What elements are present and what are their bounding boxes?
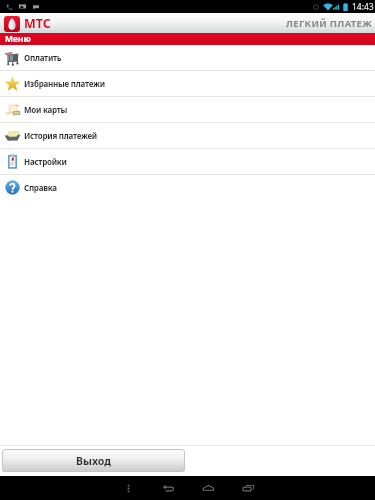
staticText: История платежей [24,130,98,141]
staticText: 14:43 [352,1,374,13]
button[interactable]: Выход [2,449,185,472]
staticText: Оплатить [24,52,62,63]
staticText: Меню [5,33,31,45]
button[interactable]: Back [157,477,179,499]
button[interactable]: Recent apps [237,477,259,499]
button[interactable]: Настройки [0,149,375,174]
button[interactable]: Мои карты [0,97,375,122]
button[interactable]: История платежей [0,123,375,148]
staticText: Мои карты [24,104,68,115]
staticText: Избранные платежи [24,78,105,89]
staticText: Настройки [24,156,67,167]
button[interactable]: Оплатить [0,45,375,70]
button[interactable]: Избранные платежи [0,71,375,96]
button[interactable]: Home [197,477,219,499]
staticText: Справка [24,182,57,193]
button[interactable]: МТС [4,15,51,32]
staticText: Выход [76,454,111,468]
button[interactable]: Справка [0,175,375,200]
staticText: МТС [24,15,51,32]
button[interactable]: Menu [117,477,139,499]
staticText: ЛЕГКИЙ ПЛАТЕЖ [286,17,373,30]
